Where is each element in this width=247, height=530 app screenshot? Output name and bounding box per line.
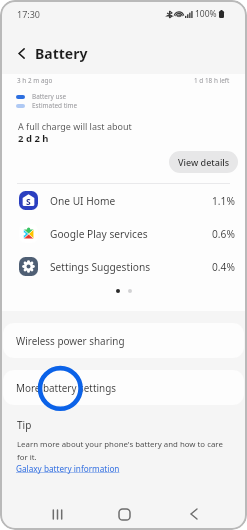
staticText: More battery settings — [16, 381, 116, 394]
staticText: Battery — [35, 44, 88, 63]
staticText: Tip — [17, 418, 32, 432]
button[interactable]: S — [0, 184, 247, 217]
staticText: One UI Home — [50, 194, 116, 208]
staticText: 2 d 2 h — [18, 132, 49, 145]
button[interactable]: Google Play services — [0, 217, 247, 250]
button[interactable]: Recent apps — [40, 498, 75, 530]
staticText: S — [26, 196, 31, 208]
staticText: Learn more about your phone's battery an… — [17, 439, 223, 463]
staticText: Settings Suggestions — [50, 260, 151, 274]
button[interactable]: Galaxy battery information — [16, 463, 120, 474]
staticText: 3 h 2 m ago — [17, 76, 53, 85]
staticText: 100% — [195, 8, 217, 20]
button[interactable]: Home — [107, 498, 142, 530]
button[interactable]: Back — [176, 498, 211, 530]
staticText: 1.1% — [212, 194, 235, 208]
staticText: Battery use — [32, 92, 67, 101]
button[interactable]: View details — [169, 151, 238, 173]
staticText: Wireless power sharing — [16, 334, 125, 347]
button[interactable]: Settings Suggestions — [0, 250, 247, 283]
staticText: Google Play services — [50, 227, 148, 241]
staticText: View details — [178, 156, 230, 168]
staticText: 0.4% — [212, 260, 235, 274]
button[interactable]: Wireless power sharing — [3, 323, 244, 358]
button[interactable]: Back — [10, 42, 32, 64]
button[interactable]: More battery settings — [3, 370, 244, 405]
staticText: Estimated time — [32, 101, 78, 110]
staticText: 0.6% — [212, 227, 235, 241]
staticText: 1 d 18 h left — [194, 76, 230, 85]
staticText: A full charge will last about — [18, 120, 132, 132]
staticText: 17:30 — [17, 8, 41, 20]
staticText: Galaxy battery information — [16, 463, 120, 474]
